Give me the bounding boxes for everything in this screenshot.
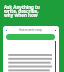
button[interactable]: More options: [54, 29, 57, 32]
staticText: Ask Anything to write, describe, why whe…: [4, 4, 40, 19]
button[interactable]: Back: [5, 29, 8, 32]
staticText: How to write essay: [19, 28, 42, 32]
button[interactable]: [6, 34, 55, 40]
